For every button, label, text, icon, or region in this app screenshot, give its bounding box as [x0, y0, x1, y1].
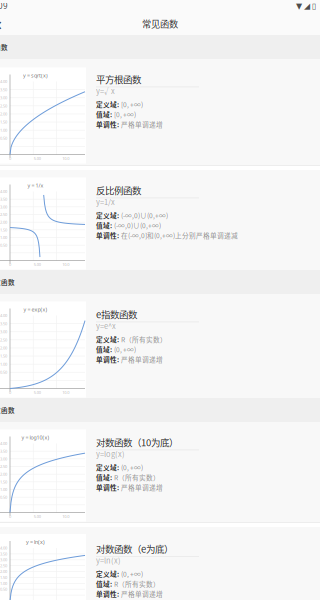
staticText: 0 — [9, 156, 11, 161]
staticText: ◢ — [304, 1, 310, 11]
staticText: 5.00 — [34, 262, 41, 267]
staticText: 0.50 — [0, 242, 7, 248]
staticText: 3.50 — [0, 448, 7, 454]
staticText: 3.50 — [0, 87, 7, 92]
staticText: y=1/x — [96, 196, 115, 207]
button[interactable]: 返回 — [0, 12, 7, 35]
staticText: y = exp(x) — [23, 306, 47, 313]
staticText: ‹ — [0, 12, 1, 35]
staticText: 严格单调递增 — [121, 482, 163, 492]
staticText: (-∞,0)∪(0,+∞) — [121, 210, 168, 220]
staticText: 严格单调递增 — [121, 119, 163, 129]
staticText: 5.00 — [34, 156, 41, 161]
staticText: 2.50 — [0, 464, 7, 469]
staticText: 定义域: — [96, 462, 119, 472]
staticText: 3.00 — [0, 95, 7, 100]
staticText: 幂函数 — [0, 42, 8, 52]
staticText: 2.50 — [0, 337, 7, 342]
staticText: 3.00 — [0, 557, 7, 562]
staticText: 2.00 — [0, 219, 7, 225]
staticText: 5.00 — [34, 514, 41, 519]
staticText: 1.00 — [0, 361, 7, 367]
staticText: (0, +∞) — [121, 462, 143, 472]
staticText: ▼ — [296, 1, 302, 11]
button[interactable]: y = exp(x) — [0, 294, 320, 398]
staticText: 10.0 — [62, 156, 69, 161]
staticText: 2.00 — [0, 345, 7, 351]
staticText: y=e^x — [96, 320, 116, 331]
staticText: 4.00 — [0, 441, 7, 446]
staticText: 0.50 — [0, 136, 7, 141]
staticText: [0, +∞) — [121, 99, 143, 109]
staticText: 3.00 — [0, 204, 7, 209]
staticText: [0, +∞) — [114, 109, 136, 119]
staticText: 1.00 — [0, 581, 7, 586]
staticText: 定义域: — [96, 210, 119, 220]
staticText: y = ln(x) — [26, 538, 45, 546]
staticText: 平方根函数 — [96, 72, 141, 86]
staticText: y=log(x) — [96, 448, 125, 459]
staticText: R（所有实数） — [121, 334, 167, 344]
staticText: 单调性: — [96, 230, 119, 240]
staticText: 09 — [0, 1, 8, 11]
staticText: 定义域: — [96, 569, 119, 579]
staticText: (0, +∞) — [121, 569, 143, 579]
staticText: (-∞,0)∪(0,+∞) — [114, 220, 161, 230]
staticText: 3.50 — [0, 551, 7, 556]
staticText: 值域: — [96, 220, 112, 230]
staticText: 1.00 — [0, 127, 7, 133]
staticText: 5.00 — [34, 390, 41, 395]
staticText: 0.50 — [0, 370, 7, 375]
staticText: 1.50 — [0, 353, 7, 359]
staticText: 2.00 — [0, 471, 7, 477]
staticText: 4.00 — [0, 189, 7, 194]
button[interactable]: y = 1/x — [0, 170, 320, 270]
staticText: 对数函数（e为底） — [96, 542, 173, 555]
staticText: 对数函数 — [0, 405, 15, 415]
staticText: 10.0 — [62, 262, 69, 267]
staticText: 3.00 — [0, 329, 7, 334]
staticText: 3.00 — [0, 456, 7, 461]
staticText: 4.00 — [0, 79, 7, 84]
staticText: 0 — [9, 390, 11, 395]
staticText: 指数函数 — [0, 277, 15, 287]
staticText: 2.50 — [0, 212, 7, 217]
button[interactable]: y = sqrt(x) — [0, 59, 320, 165]
staticText: 1.50 — [0, 479, 7, 484]
staticText: 定义域: — [96, 99, 119, 109]
staticText: y = sqrt(x) — [23, 72, 48, 79]
staticText: 0 — [9, 262, 11, 267]
staticText: 值域: — [96, 344, 112, 354]
staticText: 严格单调递增 — [121, 354, 163, 364]
staticText: 值域: — [96, 579, 112, 589]
button[interactable]: y = log10(x) — [0, 422, 320, 522]
staticText: 3.50 — [0, 196, 7, 202]
staticText: 4.00 — [0, 545, 7, 551]
staticText: 2.00 — [0, 569, 7, 574]
staticText: 单调性: — [96, 482, 119, 492]
staticText: 10.0 — [62, 514, 69, 519]
staticText: 2.50 — [0, 103, 7, 108]
staticText: y=ln(x) — [96, 555, 121, 566]
staticText: 反比例函数 — [96, 183, 141, 197]
staticText: 2.00 — [0, 111, 7, 117]
staticText: y = log10(x) — [21, 434, 49, 441]
staticText: 1.50 — [0, 227, 7, 232]
staticText: e指数函数 — [96, 307, 137, 321]
staticText: 单调性: — [96, 119, 119, 129]
staticText: 0.50 — [0, 587, 7, 592]
staticText: 值域: — [96, 472, 112, 482]
staticText: 10.0 — [62, 390, 69, 395]
staticText: 1.00 — [0, 487, 7, 492]
staticText: 定义域: — [96, 334, 119, 344]
staticText: 1.50 — [0, 119, 7, 125]
staticText: 对数函数（10为底） — [96, 435, 178, 449]
staticText: 值域: — [96, 109, 112, 119]
staticText: 0.50 — [0, 494, 7, 500]
staticText: 2.50 — [0, 563, 7, 568]
staticText: y = 1/x — [27, 182, 43, 189]
staticText: 4.00 — [0, 313, 7, 318]
staticText: 3.50 — [0, 321, 7, 326]
staticText: 严格单调递增 — [121, 589, 163, 599]
button[interactable]: y = ln(x) — [0, 527, 320, 600]
